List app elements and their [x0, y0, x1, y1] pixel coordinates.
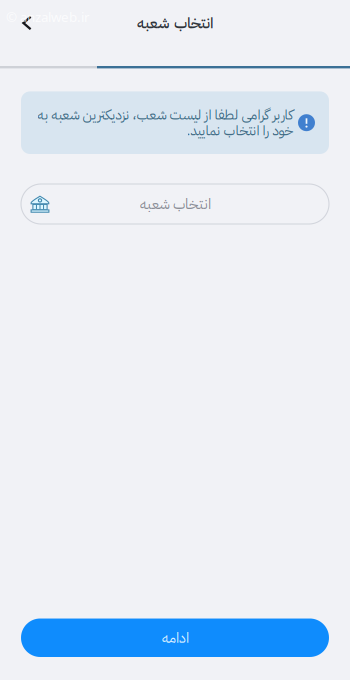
button[interactable]: انتخاب شعبه: [21, 184, 329, 224]
staticText: انتخاب شعبه: [136, 11, 213, 34]
staticText: ادامه: [161, 627, 188, 649]
button[interactable]: ادامه: [21, 618, 329, 657]
staticText: انتخاب شعبه: [139, 193, 210, 215]
button[interactable]: Back: [6, 2, 48, 44]
staticText: کاربر گرامی لطفا از لیست شعب، نزدیکترین …: [37, 104, 293, 125]
staticText: © anzalweb.ir: [6, 8, 90, 26]
staticText: خود را انتخاب نمایید.: [186, 120, 293, 141]
